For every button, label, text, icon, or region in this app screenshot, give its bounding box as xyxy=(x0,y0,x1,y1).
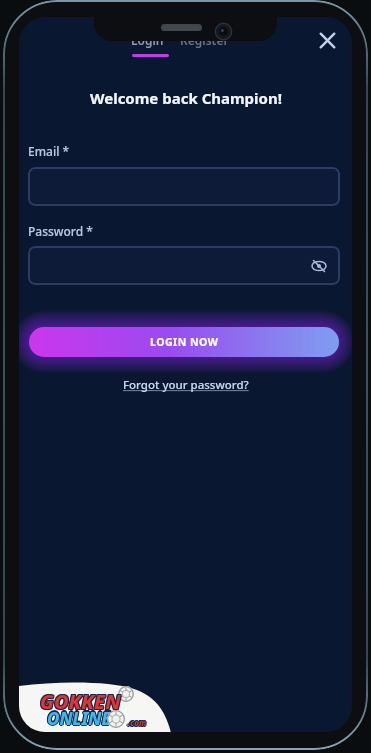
button[interactable] xyxy=(312,25,343,56)
staticText: .com xyxy=(128,717,147,728)
staticText: Email * xyxy=(28,143,70,159)
staticText: ONLINE xyxy=(47,708,111,731)
staticText: Welcome back Champion! xyxy=(90,88,282,108)
staticText: GOKKEN xyxy=(40,688,121,715)
staticText: .com xyxy=(127,716,146,727)
staticText: .com xyxy=(129,717,148,728)
staticText: ONLINE xyxy=(48,707,112,730)
staticText: .com xyxy=(128,718,147,729)
staticText: Forgot your password? xyxy=(123,377,249,393)
staticText: .com xyxy=(128,716,147,727)
staticText: GOKKEN xyxy=(40,687,121,714)
button[interactable]: Login xyxy=(117,28,177,52)
staticText: GOKKEN xyxy=(41,687,122,714)
button[interactable] xyxy=(28,246,340,285)
staticText: Password * xyxy=(28,223,93,239)
staticText: .com xyxy=(126,717,145,728)
staticText: .com xyxy=(128,718,147,729)
button[interactable]: Forgot your password? xyxy=(123,377,249,393)
staticText: LOGIN NOW xyxy=(150,335,219,349)
staticText: .com xyxy=(127,718,146,729)
staticText: Login xyxy=(131,32,164,48)
staticText: .com xyxy=(128,716,147,727)
staticText: Register xyxy=(180,32,229,48)
staticText: ONLINE xyxy=(46,707,110,730)
staticText: ONLINE xyxy=(48,706,112,729)
staticText: ONLINE xyxy=(47,707,111,730)
staticText: ONLINE xyxy=(46,707,110,730)
staticText: GOKKEN xyxy=(39,688,120,715)
button[interactable]: Register xyxy=(174,28,235,52)
staticText: GOKKEN xyxy=(39,689,120,716)
staticText: ONLINE xyxy=(46,706,110,729)
staticText: ONLINE xyxy=(47,705,111,728)
staticText: GOKKEN xyxy=(41,689,122,716)
staticText: GOKKEN xyxy=(39,687,120,714)
button[interactable]: LOGIN NOW xyxy=(29,327,339,357)
staticText: GOKKEN xyxy=(41,688,122,715)
staticText: GOKKEN xyxy=(40,689,121,716)
button[interactable] xyxy=(28,167,340,206)
staticText: ONLINE xyxy=(48,707,112,730)
